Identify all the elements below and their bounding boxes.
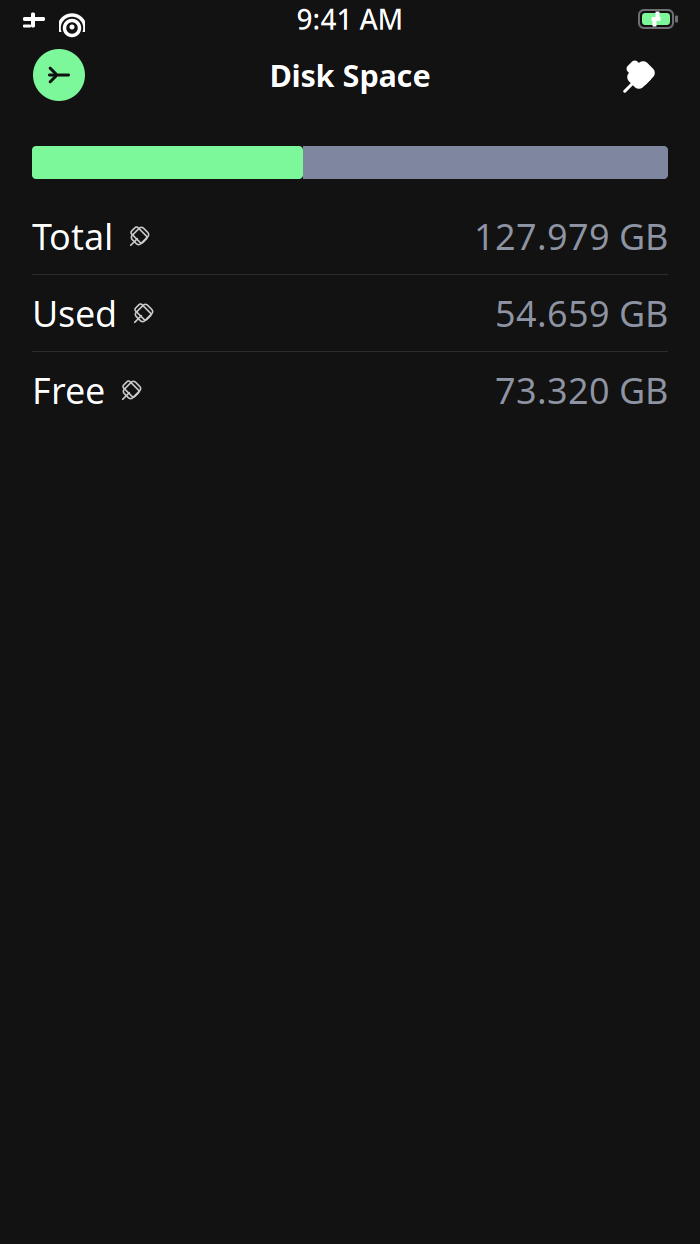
staticText: 73.320 GB (495, 366, 668, 414)
staticText: Total (32, 212, 113, 260)
staticText: 9:41 AM (296, 0, 403, 38)
staticText: Free (32, 366, 105, 414)
button[interactable]: Back (33, 49, 85, 101)
button[interactable]: Pin (615, 49, 667, 101)
button[interactable]: Total (0, 198, 700, 274)
staticText: 127.979 GB (474, 212, 668, 260)
staticText: 54.659 GB (495, 289, 668, 337)
staticText: Disk Space (269, 55, 430, 95)
button[interactable]: Used (0, 275, 700, 351)
staticText: Used (32, 289, 117, 337)
button[interactable]: Free (0, 352, 700, 428)
